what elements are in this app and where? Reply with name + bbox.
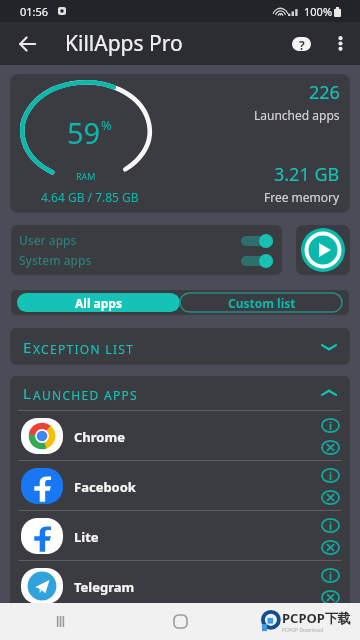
button[interactable]: Lite	[10, 511, 350, 560]
button[interactable]: Home	[120, 603, 240, 640]
staticText: RAM	[76, 170, 96, 182]
staticText: 3.21 GB	[274, 162, 340, 187]
button[interactable]: App info	[318, 414, 342, 436]
staticText: Lite	[74, 528, 99, 546]
button[interactable]: System apps	[19, 250, 273, 270]
staticText: KillApps Pro	[65, 29, 183, 58]
button[interactable]: Facebook	[10, 461, 350, 510]
staticText: Launched apps	[254, 107, 340, 123]
button[interactable]: Close app	[318, 536, 342, 558]
button[interactable]: App info	[318, 464, 342, 486]
button[interactable]: All apps	[17, 293, 180, 312]
staticText: System apps	[19, 252, 92, 268]
staticText: 01:56	[20, 4, 49, 19]
button[interactable]: Telegram	[10, 561, 350, 610]
button[interactable]: App info	[318, 514, 342, 536]
staticText: 59	[67, 113, 101, 152]
staticText: 100%	[304, 4, 333, 19]
staticText: PCPOP Download	[282, 627, 324, 634]
staticText: 226	[309, 80, 340, 105]
staticText: %	[101, 116, 112, 134]
button[interactable]: App info	[318, 564, 342, 586]
staticText: ?	[299, 37, 305, 51]
staticText: 4.64 GB / 7.85 GB	[41, 189, 139, 205]
staticText: Free memory	[264, 189, 340, 205]
button[interactable]: L	[10, 376, 350, 410]
staticText: User apps	[19, 232, 77, 248]
staticText: Custom list	[228, 295, 296, 311]
staticText: Telegram	[74, 578, 135, 596]
button[interactable]: Chrome	[10, 411, 350, 460]
button[interactable]: Custom list	[180, 293, 343, 312]
staticText: AUNCHED APPS	[33, 387, 138, 403]
staticText: PCPOP下载	[282, 609, 351, 627]
staticText: L	[23, 383, 33, 403]
staticText: XCEPTION LIST	[33, 341, 135, 357]
staticText: Facebook	[74, 478, 136, 496]
button[interactable]: Close app	[318, 486, 342, 508]
staticText: All apps	[75, 295, 122, 311]
staticText: E	[23, 337, 33, 357]
staticText: Chrome	[74, 428, 125, 446]
button[interactable]: Kill apps	[296, 225, 350, 275]
button[interactable]: Close app	[318, 586, 342, 608]
button[interactable]: More options	[321, 22, 360, 65]
button[interactable]: Close app	[318, 436, 342, 458]
button[interactable]: E	[10, 328, 350, 365]
button[interactable]: User apps	[19, 230, 273, 250]
button[interactable]: Back	[0, 22, 48, 65]
button[interactable]: Recents	[0, 603, 120, 640]
button[interactable]: Help	[281, 22, 321, 65]
